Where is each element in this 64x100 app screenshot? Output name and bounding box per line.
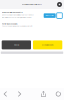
button[interactable]: Page settings [57,2,62,7]
staticText: When you visit any website, it may store… [2,14,34,16]
button[interactable]: Always Active [44,13,56,18]
button[interactable]: Forward [17,91,22,97]
staticText: Performance Cookies [2,23,18,25]
staticText: Reject All [14,44,19,46]
button[interactable]: Toggle strictly necessary cookies [57,13,62,18]
staticText: These cookies allow us to count visits a… [2,25,33,27]
staticText: information on your browser, mostly in c… [2,16,32,18]
staticText: example-domain.com/privacy [22,4,42,5]
button[interactable]: Accept All Cookies [33,40,62,49]
button[interactable]: Reject All [2,40,31,49]
staticText: Privacy Preference Centre [2,12,23,13]
staticText: Accept All Cookies [42,44,54,46]
button[interactable]: Tabs [56,91,61,97]
staticText: Always Active [45,15,54,16]
button[interactable]: Back [3,91,8,97]
button[interactable]: Share [41,91,46,97]
